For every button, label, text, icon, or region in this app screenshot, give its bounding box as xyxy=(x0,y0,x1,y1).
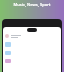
staticText: Music, News, Sport xyxy=(0,2,64,7)
button[interactable] xyxy=(5,33,59,39)
button[interactable] xyxy=(5,42,11,47)
button[interactable] xyxy=(5,59,11,63)
button[interactable] xyxy=(5,51,11,55)
